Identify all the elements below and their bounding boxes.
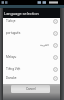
button[interactable]: Türkçe xyxy=(3,15,60,27)
staticText: العربية xyxy=(40,43,49,47)
staticText: português xyxy=(6,31,21,35)
button[interactable]: العربية xyxy=(3,39,60,51)
button[interactable]: português xyxy=(3,27,60,39)
staticText: Türkçe xyxy=(6,19,16,23)
staticText: Danske xyxy=(6,76,17,80)
staticText: Language selection xyxy=(4,11,39,16)
staticText: Melayu xyxy=(6,55,17,59)
button[interactable]: Tiếng Việt xyxy=(3,63,60,75)
button[interactable]: Cancel xyxy=(11,85,50,93)
staticText: Tiếng Việt xyxy=(6,67,21,71)
button[interactable]: Melayu xyxy=(3,51,60,63)
button[interactable]: Danske xyxy=(3,75,60,81)
staticText: Cancel xyxy=(26,87,36,91)
